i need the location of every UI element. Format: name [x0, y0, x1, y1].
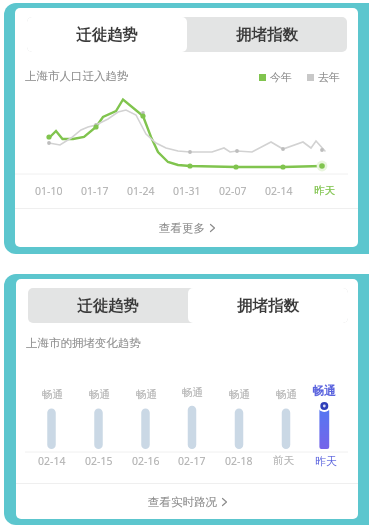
staticText: 畅通 [136, 388, 157, 401]
button[interactable]: 拥堵指数 [187, 17, 347, 52]
staticText: 02-14 [38, 454, 66, 468]
button[interactable]: 迁徙趋势 [27, 17, 187, 52]
staticText: 01-31 [173, 184, 201, 198]
staticText: 上海市人口迁入趋势 [25, 69, 129, 83]
staticText: 02-17 [178, 454, 206, 468]
staticText: 02-15 [85, 454, 113, 468]
staticText: 查看更多 [159, 221, 205, 235]
button[interactable]: 拥堵指数 [188, 288, 348, 323]
staticText: 昨天 [314, 184, 335, 197]
staticText: 迁徙趋势 [76, 25, 138, 45]
staticText: 上海市的拥堵变化趋势 [26, 336, 141, 350]
staticText: 畅通 [42, 388, 63, 401]
staticText: 去年 [318, 70, 340, 84]
staticText: 02-16 [132, 454, 160, 468]
staticText: 昨天 [315, 454, 337, 468]
staticText: 01-24 [127, 184, 155, 198]
staticText: 02-14 [265, 184, 293, 198]
staticText: 前天 [273, 454, 294, 467]
staticText: 迁徙趋势 [77, 296, 139, 316]
button[interactable]: 迁徙趋势 [28, 288, 188, 323]
staticText: 01-10 [35, 184, 63, 198]
staticText: 畅通 [89, 388, 110, 401]
staticText: 02-18 [225, 454, 253, 468]
staticText: 畅通 [276, 388, 297, 401]
staticText: 02-07 [219, 184, 247, 198]
button[interactable]: 查看实时路况 [16, 484, 358, 519]
staticText: 今年 [270, 70, 292, 84]
staticText: 拥堵指数 [237, 296, 299, 316]
staticText: 拥堵指数 [236, 25, 298, 45]
button[interactable]: 查看更多 [15, 209, 358, 247]
staticText: 畅通 [229, 388, 250, 401]
staticText: 01-17 [81, 184, 109, 198]
staticText: 畅通 [312, 383, 336, 398]
staticText: 查看实时路况 [148, 495, 217, 509]
staticText: 畅通 [182, 386, 203, 399]
